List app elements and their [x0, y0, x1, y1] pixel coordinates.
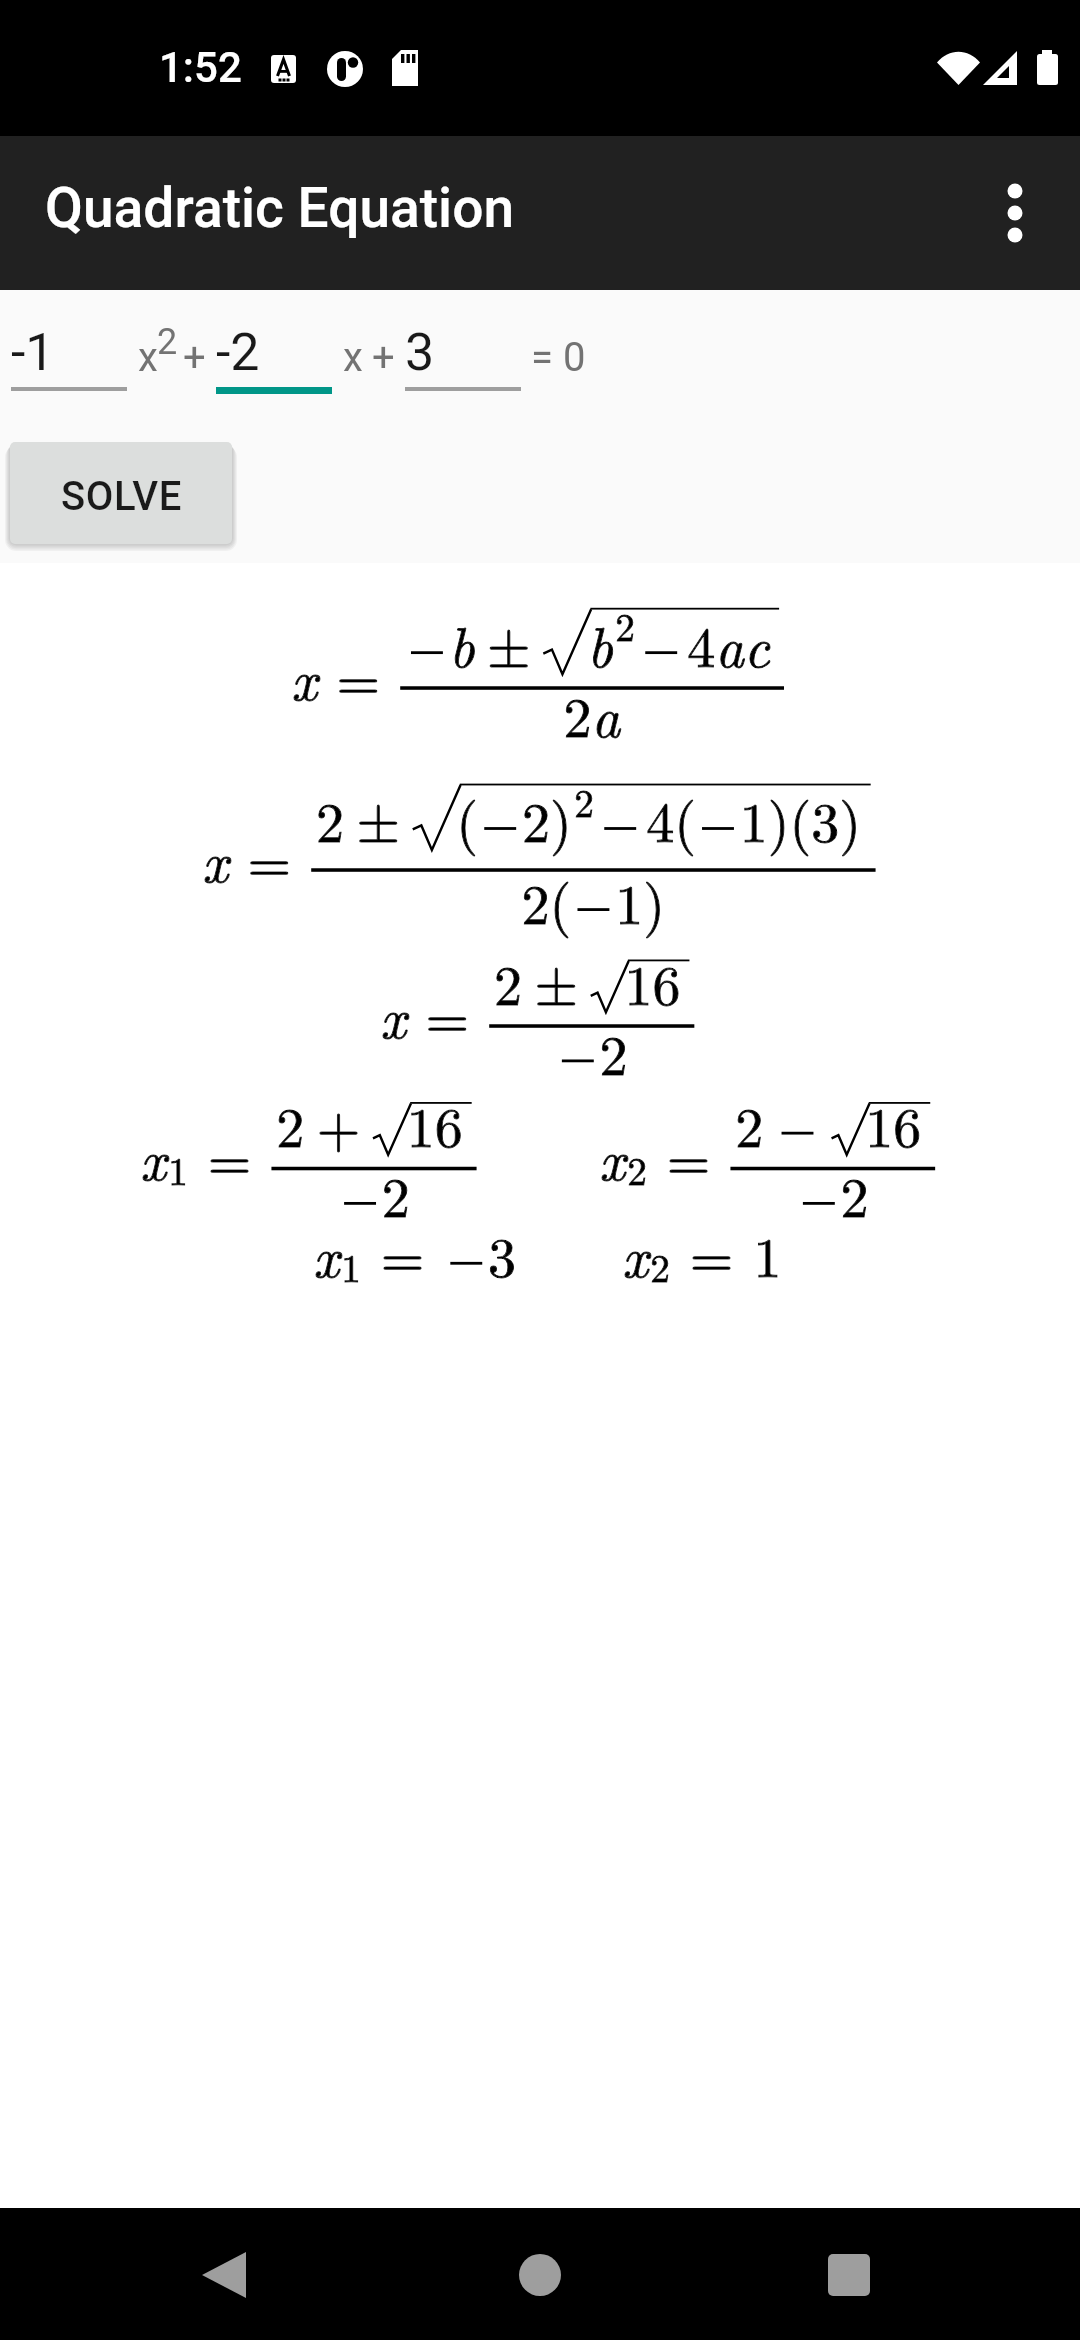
staticText: SOLVE [61, 473, 182, 520]
button[interactable]: -1 [11, 322, 127, 432]
staticText: 3 [405, 322, 435, 383]
button[interactable]: Home [480, 2210, 600, 2330]
staticText: -2 [216, 322, 260, 383]
staticText: 1:52 [159, 43, 242, 92]
button[interactable]: SOLVE [10, 442, 232, 544]
button[interactable]: 3 [405, 322, 521, 432]
staticText: -1 [11, 322, 55, 383]
staticText: x [138, 334, 158, 381]
button[interactable]: Back [164, 2210, 284, 2330]
button[interactable]: Recent apps [789, 2210, 909, 2330]
staticText: + [372, 334, 395, 381]
staticText: = 0 [531, 334, 586, 381]
button[interactable]: More options [960, 158, 1070, 268]
staticText: x [343, 334, 363, 381]
button[interactable]: -2 [216, 322, 332, 432]
staticText: + [183, 334, 206, 381]
staticText: Quadratic Equation [45, 176, 515, 240]
staticText: 2 [157, 321, 178, 363]
